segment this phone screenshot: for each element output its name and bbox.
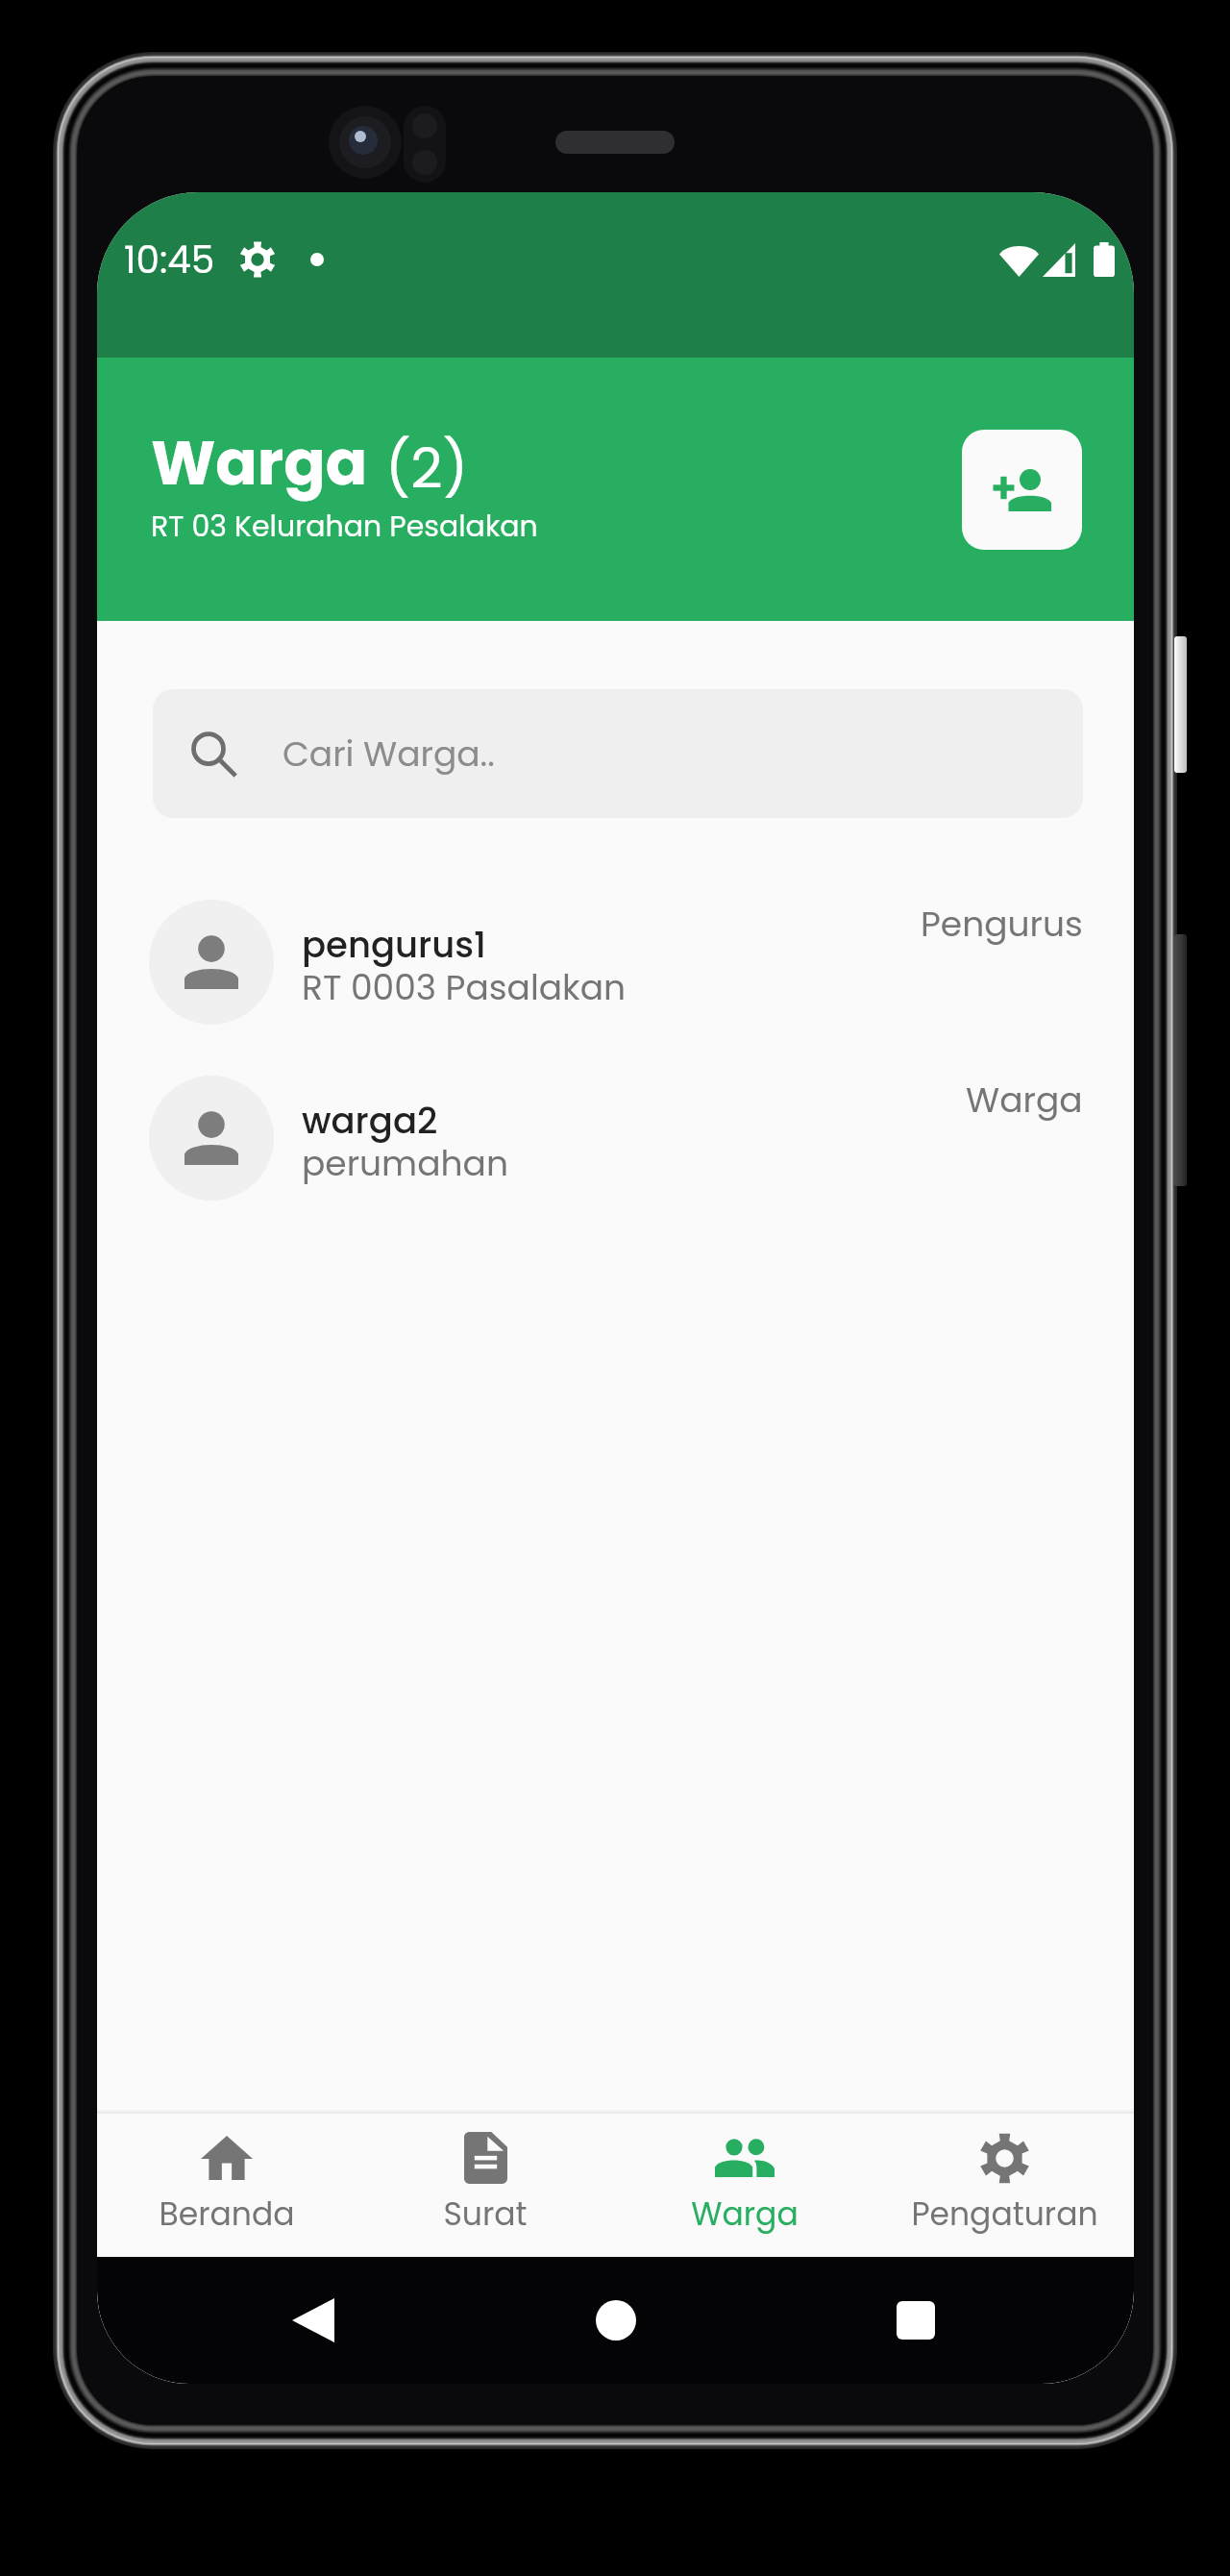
button[interactable]: Beranda — [97, 2109, 356, 2257]
staticText: RT 03 Kelurahan Pesalakan — [151, 507, 538, 547]
staticText: Pengaturan — [911, 2192, 1098, 2236]
other: Back — [292, 2298, 334, 2342]
staticText: Warga — [966, 1076, 1083, 1124]
button[interactable]: Cari Warga.. — [153, 689, 1083, 818]
staticText: 10:45 — [124, 234, 215, 286]
button[interactable]: warga2 — [97, 1076, 1134, 1201]
staticText: pengurus1 — [302, 920, 486, 970]
staticText: RT 0003 Pasalakan — [302, 963, 627, 1011]
other: Recents — [897, 2301, 935, 2340]
staticText: Pengurus — [921, 900, 1083, 948]
staticText: warga2 — [302, 1096, 438, 1146]
staticText: Warga — [151, 420, 368, 507]
button[interactable]: Tambah warga — [962, 430, 1082, 550]
staticText: Warga — [691, 2192, 799, 2236]
staticText: (2) — [385, 429, 469, 507]
other: Home — [596, 2300, 636, 2341]
staticText: Surat — [443, 2192, 528, 2236]
button[interactable]: Surat — [356, 2109, 615, 2257]
staticText: perumahan — [302, 1139, 508, 1187]
button[interactable]: Pengaturan — [874, 2109, 1134, 2257]
button[interactable]: pengurus1 — [97, 900, 1134, 1025]
staticText: Beranda — [159, 2192, 295, 2236]
staticText: Cari Warga.. — [283, 730, 495, 778]
button[interactable]: Warga — [615, 2109, 874, 2257]
